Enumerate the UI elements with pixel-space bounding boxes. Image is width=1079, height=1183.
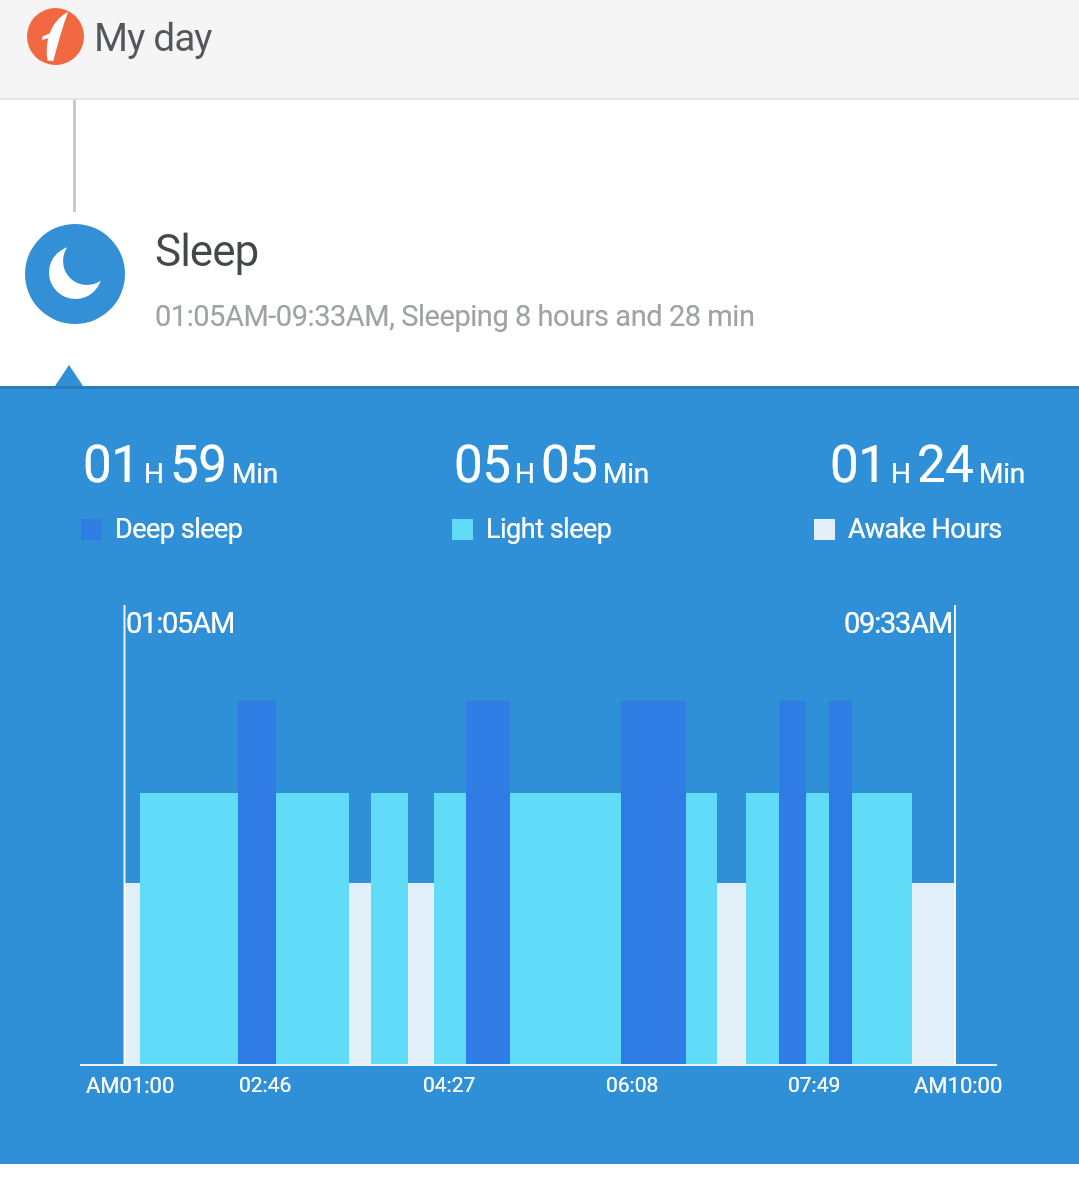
staticText: AM01:00	[86, 1073, 175, 1099]
staticText: 04:27	[423, 1073, 476, 1098]
staticText: Light sleep	[486, 513, 612, 545]
staticText: 09:33AM	[844, 606, 953, 640]
staticText: Min	[603, 457, 649, 490]
button[interactable]: 01	[0, 386, 1079, 1164]
staticText: 06:08	[606, 1073, 659, 1098]
staticText: 01:05AM-09:33AM, Sleeping 8 hours and 28…	[155, 299, 755, 333]
staticText: Min	[232, 457, 278, 490]
staticText: Sleep	[155, 225, 259, 277]
staticText: Min	[979, 457, 1025, 490]
staticText: H	[515, 457, 535, 490]
staticText: 07:49	[788, 1073, 841, 1098]
staticText: 02:46	[239, 1073, 292, 1098]
staticText: 05	[454, 435, 511, 495]
staticText: H	[891, 457, 911, 490]
staticText: My day	[94, 15, 212, 61]
staticText: 05	[541, 435, 598, 495]
staticText: AM10:00	[914, 1073, 1003, 1099]
button[interactable]: My day	[0, 0, 1079, 100]
staticText: 01:05AM	[126, 606, 235, 640]
staticText: 24	[917, 435, 974, 495]
staticText: 01	[830, 435, 887, 495]
staticText: 59	[170, 435, 227, 495]
staticText: Deep sleep	[115, 513, 243, 545]
staticText: H	[144, 457, 164, 490]
staticText: Awake Hours	[848, 513, 1002, 545]
staticText: 01	[83, 435, 140, 495]
button[interactable]	[25, 224, 125, 324]
